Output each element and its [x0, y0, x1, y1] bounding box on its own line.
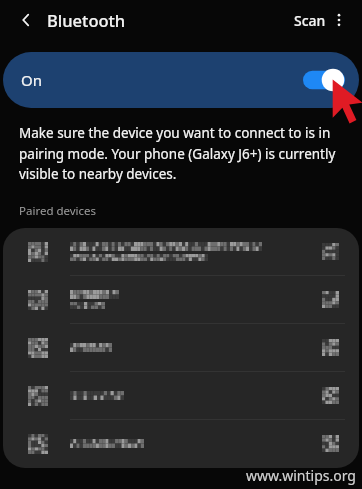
button[interactable]: More options — [324, 5, 354, 35]
button[interactable]: Paired device — [3, 276, 359, 323]
button[interactable]: Scan — [290, 7, 330, 34]
button[interactable]: Bluetooth toggle — [303, 68, 345, 92]
button[interactable]: Paired device — [3, 420, 359, 467]
staticText: Paired devices — [19, 203, 97, 219]
button[interactable]: On — [3, 52, 359, 108]
button[interactable]: Paired device — [3, 228, 359, 275]
button[interactable]: Paired device — [3, 372, 359, 419]
button[interactable]: Back — [10, 4, 42, 36]
staticText: www.wintips.org — [246, 466, 356, 485]
staticText: Scan — [294, 11, 326, 30]
staticText: Make sure the device you want to connect… — [19, 124, 343, 183]
staticText: On — [21, 70, 42, 90]
button[interactable]: Paired device — [3, 324, 359, 371]
staticText: Bluetooth — [47, 9, 126, 31]
